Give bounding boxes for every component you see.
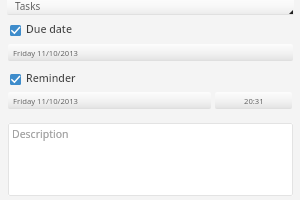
staticText: Tasks [15,0,41,13]
button[interactable]: Tasks list selector [7,0,294,15]
staticText: Friday 11/10/2013 [13,48,79,58]
staticText: Due date [26,22,72,36]
button[interactable]: Description [8,123,293,196]
button[interactable]: Friday 11/10/2013 [8,92,211,109]
staticText: Description [12,127,69,141]
staticText: Friday 11/10/2013 [13,96,79,106]
button[interactable]: Due date [6,20,78,41]
button[interactable]: Friday 11/10/2013 [8,44,293,61]
button[interactable]: Reminder [6,69,82,90]
button[interactable]: 20:31 [215,92,292,109]
staticText: Reminder [26,71,76,85]
staticText: 20:31 [244,96,264,106]
